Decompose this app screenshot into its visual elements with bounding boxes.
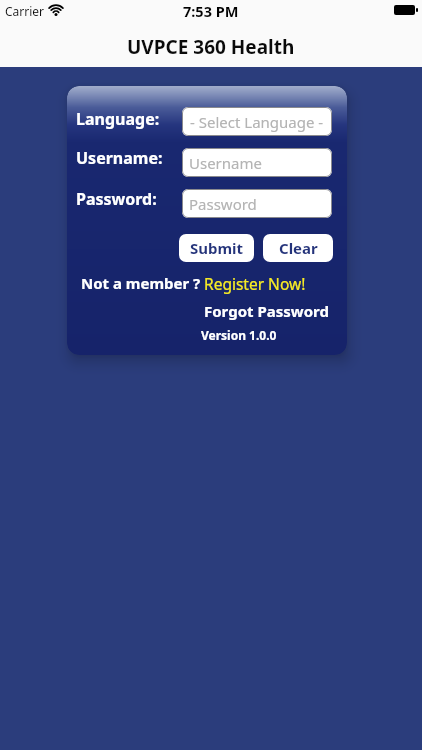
button[interactable]: Forgot Password [204,297,329,325]
staticText: Register Now! [204,273,306,294]
staticText: Forgot Password [204,301,329,321]
staticText: Password [189,194,257,214]
staticText: Submit [190,238,244,258]
staticText: Username: [76,147,163,169]
staticText: Not a member ? [81,273,201,293]
staticText: Version 1.0.0 [201,327,277,343]
staticText: Password: [76,188,157,210]
staticText: Clear [279,238,318,258]
staticText: - Select Language - [190,112,324,132]
staticText: Carrier [5,3,45,19]
button[interactable]: - Select Language - [182,107,332,136]
staticText: UVPCE 360 Health [127,34,295,60]
button[interactable]: Register Now! [204,269,306,297]
button[interactable]: Clear [263,234,333,262]
button[interactable]: Password [182,189,332,218]
button[interactable]: Submit [179,234,254,262]
staticText: Username [189,153,262,173]
button[interactable]: Username [182,148,332,177]
staticText: 7:53 PM [183,1,239,21]
staticText: Language: [76,108,160,130]
